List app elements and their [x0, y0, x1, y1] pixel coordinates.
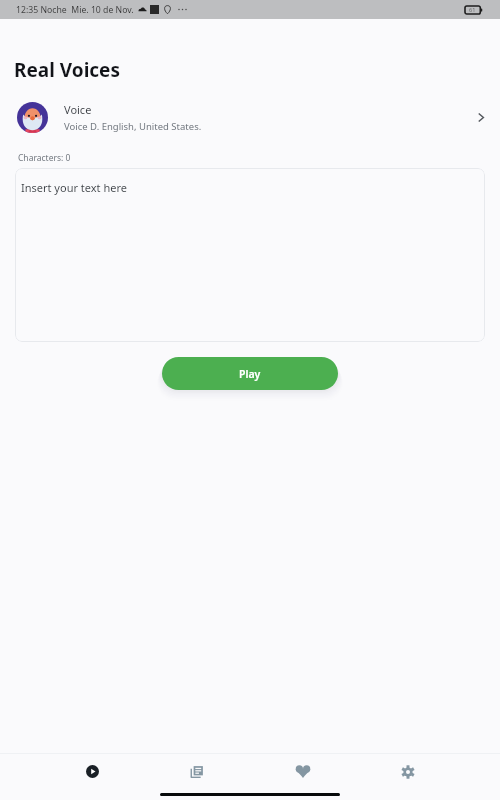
button[interactable]: Voice: [0, 100, 500, 134]
button[interactable]: Settings: [355, 754, 460, 789]
staticText: Real Voices: [14, 57, 121, 83]
button[interactable]: Favorites: [250, 754, 355, 789]
staticText: Characters: 0: [18, 152, 71, 164]
button[interactable]: Play: [40, 754, 145, 789]
staticText: Voice D. English, United States.: [64, 120, 202, 133]
staticText: 61: [469, 6, 476, 14]
button[interactable]: Library: [145, 754, 250, 789]
staticText: Insert your text here: [21, 180, 127, 195]
staticText: 12:35 Noche Mie. 10 de Nov.: [16, 4, 134, 16]
staticText: Play: [239, 367, 261, 381]
button[interactable]: Play: [162, 357, 338, 390]
staticText: Voice: [64, 102, 92, 117]
